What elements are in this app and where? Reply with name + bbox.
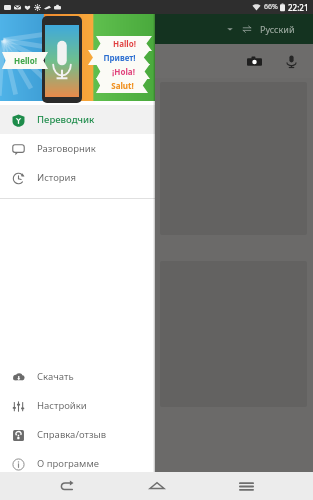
staticText: 66% [264, 2, 278, 12]
button[interactable]: Разговорник [0, 134, 155, 163]
button[interactable]: Переводчик [0, 105, 155, 134]
button[interactable]: Recent apps [224, 472, 268, 500]
staticText: ¡Hola! [112, 66, 135, 77]
staticText: История [37, 171, 76, 184]
staticText: Переводчик [37, 113, 95, 126]
staticText: Salut! [111, 80, 134, 91]
button[interactable]: Настройки [0, 391, 155, 420]
button[interactable]: История [0, 163, 155, 192]
staticText: Настройки [37, 399, 87, 412]
button[interactable]: Back [45, 472, 89, 500]
button[interactable]: Скачать [0, 362, 155, 391]
staticText: Hallo! [113, 38, 136, 49]
staticText: Привет! [103, 52, 136, 63]
staticText: Русский [8, 23, 43, 35]
button[interactable]: Home [135, 472, 179, 500]
staticText: Русский [260, 23, 295, 35]
staticText: Скачать [37, 370, 74, 383]
staticText: О программе [37, 457, 99, 470]
staticText: Разговорник [37, 142, 96, 155]
staticText: Hello! [14, 55, 37, 66]
button[interactable]: О программе [0, 449, 155, 478]
button[interactable]: Справка/отзыв [0, 420, 155, 449]
staticText: 22:21 [288, 2, 309, 13]
staticText: Справка/отзыв [37, 428, 107, 441]
